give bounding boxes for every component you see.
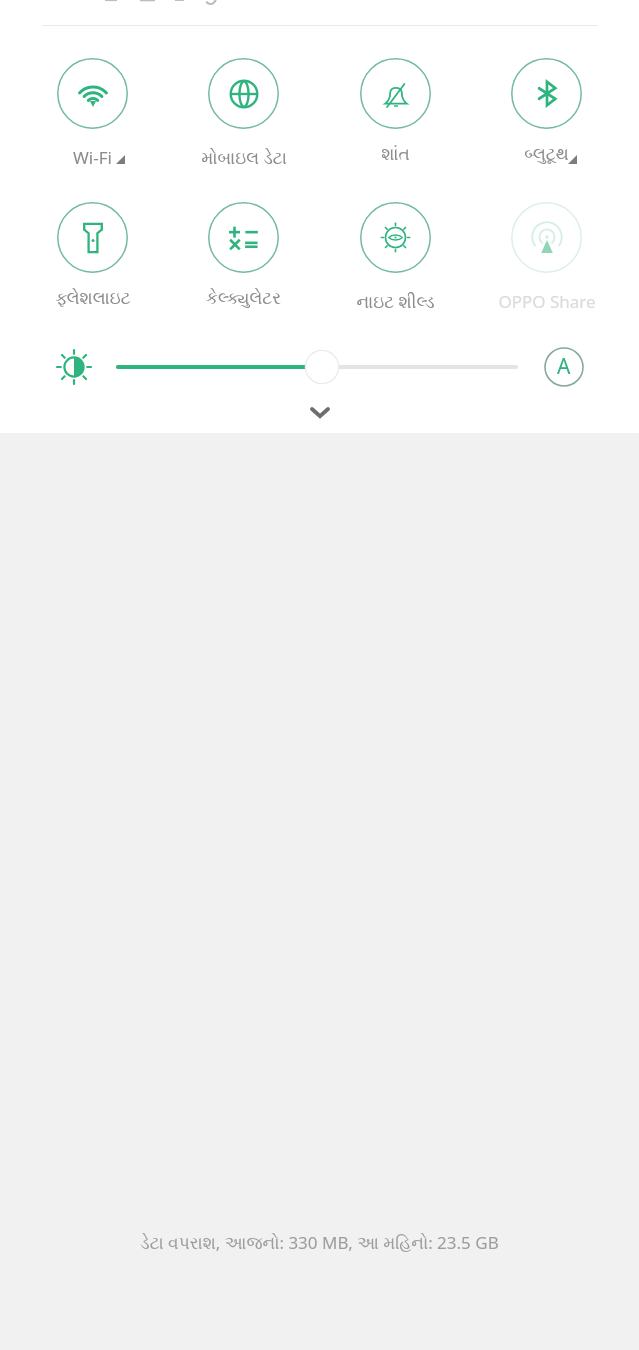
button[interactable]: Wi-Fi	[17, 58, 168, 174]
staticText: ફ્લેશલાઇટ	[55, 290, 131, 307]
button[interactable]: Expand quick settings	[294, 386, 346, 438]
staticText: A	[557, 352, 571, 381]
button[interactable]: OPPO Share	[471, 202, 622, 318]
staticText: કેલ્ક્યુલેટર	[206, 290, 281, 307]
staticText: બ્લુટૂથ	[524, 146, 569, 163]
button[interactable]: બ્લુટૂથ settings	[568, 155, 577, 164]
button[interactable]: કેલ્ક્યુલેટર	[168, 202, 319, 318]
staticText: શાંત	[381, 146, 410, 163]
button[interactable]: Wi-Fi settings	[116, 155, 125, 164]
button[interactable]: ફ્લેશલાઇટ	[17, 202, 168, 318]
other: Brightness	[54, 347, 94, 387]
staticText: મોબાઇલ ડેટા	[201, 146, 287, 169]
button[interactable]: મોબાઇલ ડેટા	[168, 58, 319, 174]
button[interactable]: Auto brightness	[540, 343, 588, 391]
button[interactable]: બ્લુટૂથ	[471, 58, 622, 174]
button[interactable]: શાંત	[320, 58, 471, 174]
staticText: OPPO Share	[498, 290, 596, 313]
button[interactable]: નાઇટ શીલ્ડ	[320, 202, 471, 318]
staticText: નાઇટ શીલ્ડ	[356, 290, 435, 313]
staticText: ડેટા વપરાશ, આજનો: 330 MB, આ મહિનો: 23.5 …	[140, 1231, 499, 1254]
staticText: Wi-Fi	[73, 146, 112, 169]
button[interactable]: Brightness slider	[100, 345, 536, 389]
